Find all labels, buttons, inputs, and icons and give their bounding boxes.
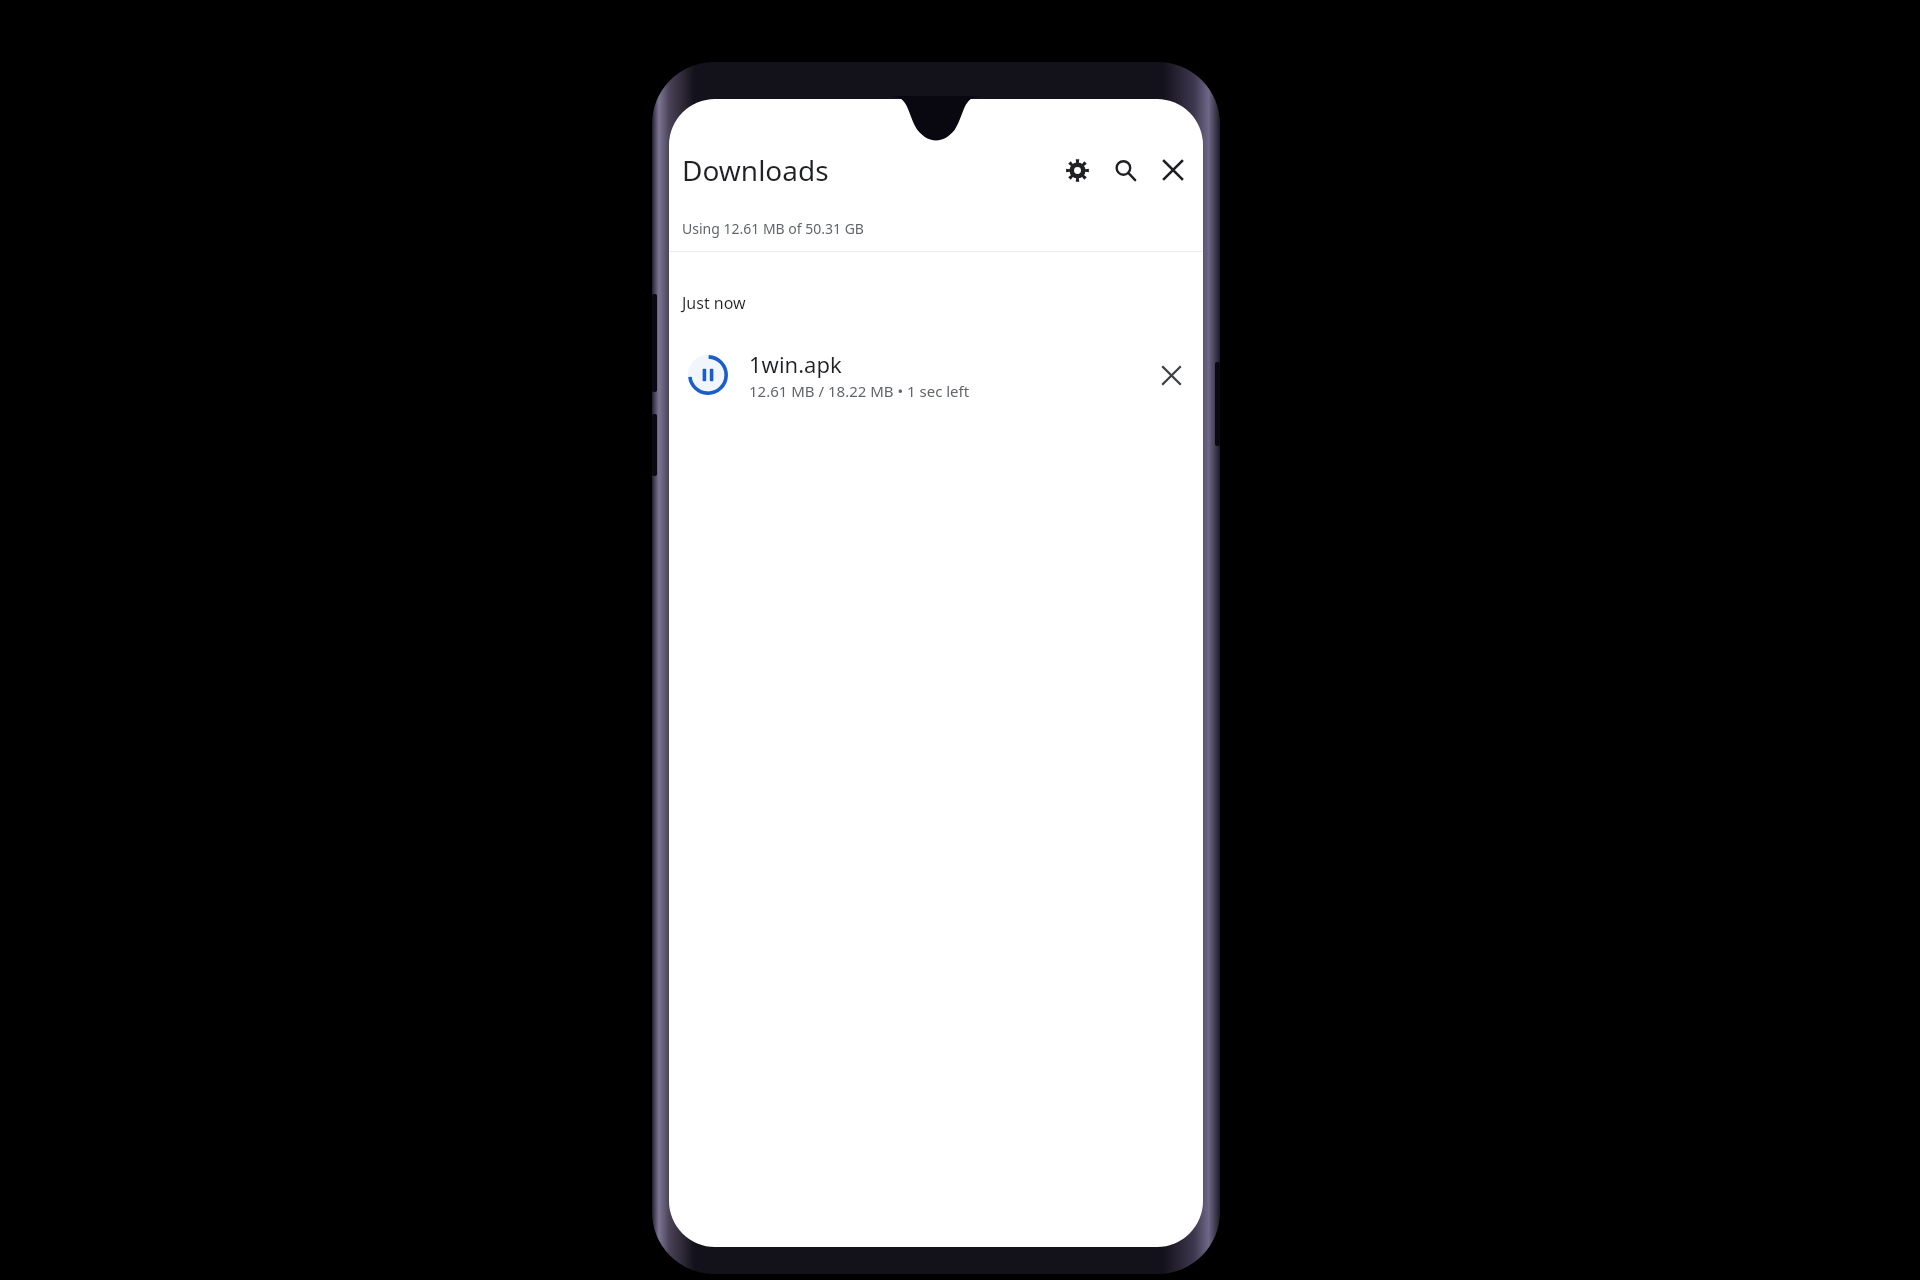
button[interactable]: Cancel download [1147, 351, 1195, 399]
button[interactable]: Pause download [683, 350, 733, 400]
staticText: Downloads [682, 151, 829, 189]
staticText: Just now [682, 292, 746, 314]
button[interactable]: Close [1149, 146, 1197, 194]
staticText: 12.61 MB / 18.22 MB • 1 sec left [749, 381, 970, 401]
button[interactable]: Search [1101, 146, 1149, 194]
staticText: Using 12.61 MB of 50.31 GB [682, 219, 864, 238]
button[interactable]: Pause download [669, 338, 1203, 412]
button[interactable]: Settings [1053, 146, 1101, 194]
staticText: 1win.apk [749, 349, 842, 379]
